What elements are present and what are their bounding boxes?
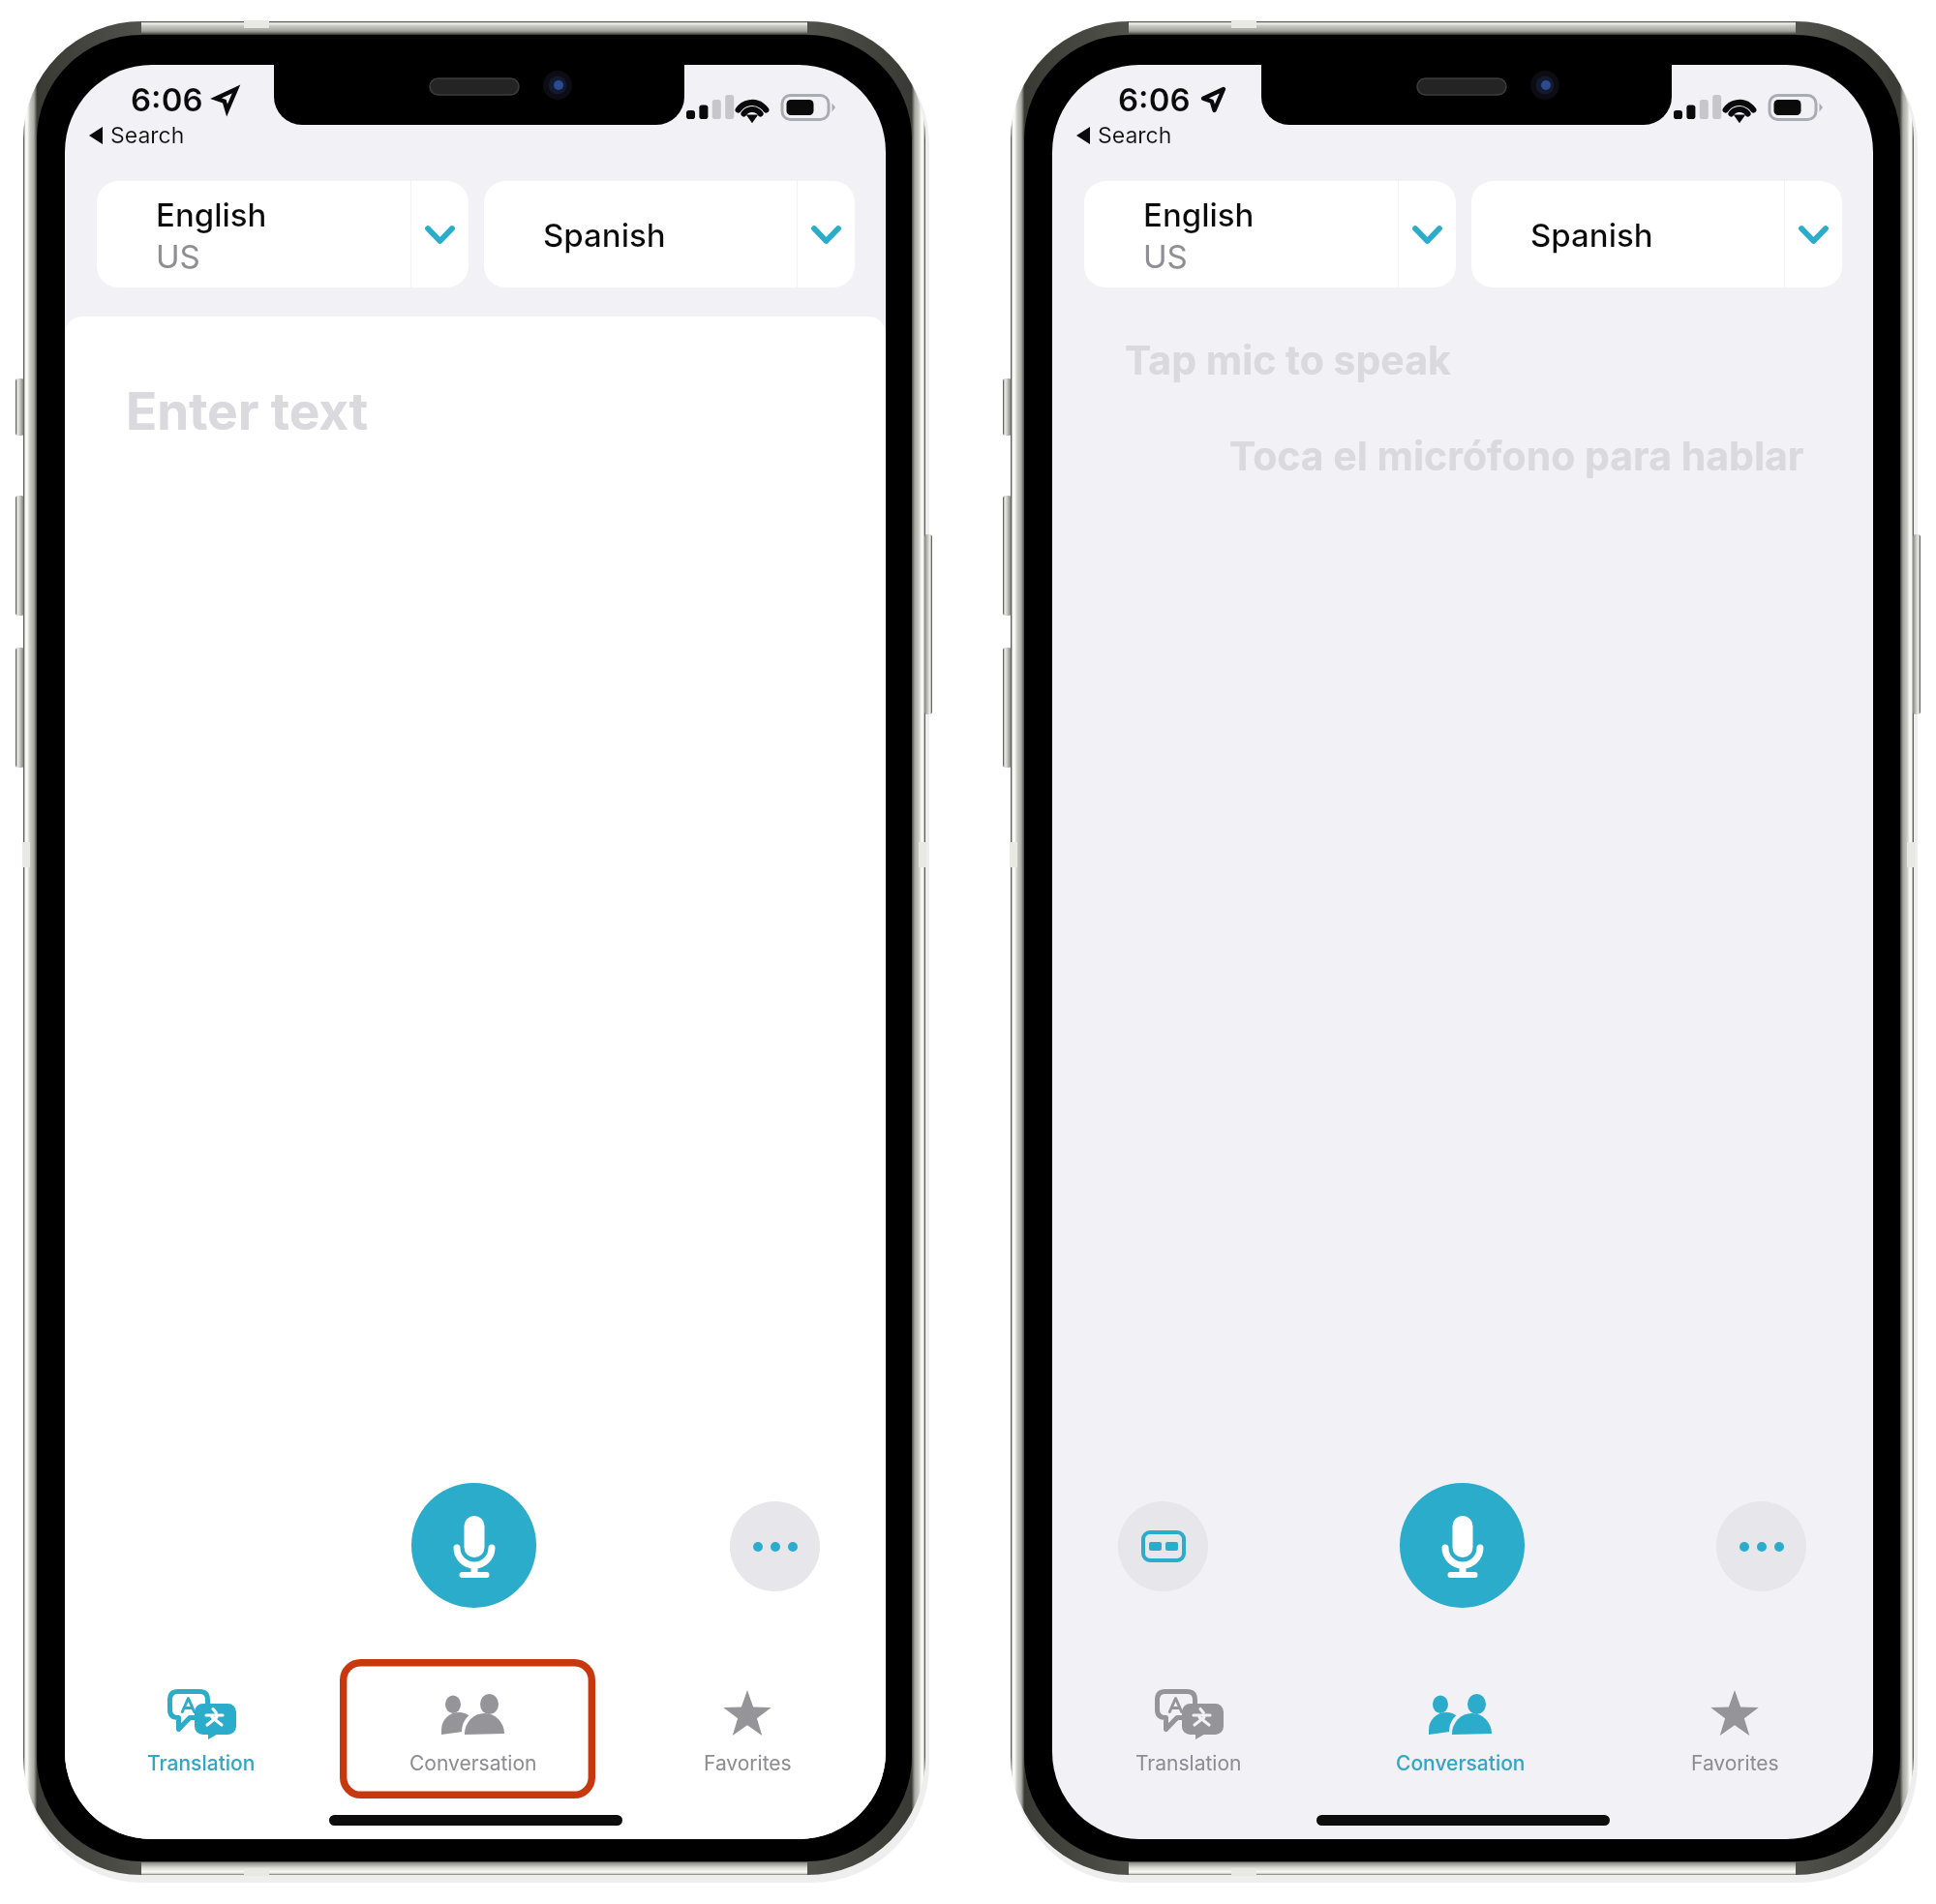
staticText: Enter text <box>126 380 369 442</box>
button[interactable]: Translation <box>1073 1686 1305 1793</box>
staticText: Favorites <box>704 1751 792 1775</box>
button[interactable]: Conversation <box>357 1686 590 1793</box>
button[interactable]: Conversation <box>1345 1686 1577 1793</box>
staticText: Favorites <box>1691 1751 1779 1775</box>
staticText: Toca el micrófono para hablar <box>1229 432 1804 480</box>
button[interactable]: Change language <box>1399 181 1456 287</box>
button[interactable]: English <box>1084 181 1398 287</box>
button[interactable]: More options <box>730 1501 820 1591</box>
staticText: Spanish <box>1530 216 1653 255</box>
staticText: Translation <box>147 1751 256 1775</box>
button[interactable]: Change language <box>798 181 855 287</box>
staticText: 6:06 <box>131 80 203 119</box>
button[interactable]: Record speech <box>1400 1483 1525 1608</box>
button[interactable]: Translation <box>85 1686 318 1793</box>
button[interactable]: More options <box>1716 1501 1806 1591</box>
button[interactable]: Change language <box>1785 181 1842 287</box>
staticText: Conversation <box>409 1751 537 1775</box>
button[interactable]: Search <box>1076 119 1172 152</box>
staticText: Search <box>1098 122 1172 149</box>
staticText: Tap mic to speak <box>1125 336 1451 384</box>
button[interactable]: Spanish <box>1471 181 1784 287</box>
staticText: Translation <box>1135 1751 1242 1775</box>
staticText: US <box>1143 237 1188 276</box>
button[interactable]: Favorites <box>1618 1686 1851 1793</box>
button[interactable]: Show transcript <box>1118 1501 1208 1591</box>
button[interactable]: Search <box>89 119 185 152</box>
button[interactable]: Spanish <box>484 181 797 287</box>
staticText: 6:06 <box>1118 80 1191 119</box>
button[interactable]: Record speech <box>411 1483 536 1608</box>
staticText: US <box>156 237 200 276</box>
staticText: Search <box>110 122 185 149</box>
staticText: Spanish <box>543 216 666 255</box>
staticText: English <box>1143 196 1255 234</box>
button[interactable]: Change language <box>411 181 469 287</box>
button[interactable]: Favorites <box>631 1686 863 1793</box>
staticText: English <box>156 196 267 234</box>
button[interactable]: English <box>97 181 410 287</box>
staticText: Conversation <box>1396 1751 1526 1775</box>
